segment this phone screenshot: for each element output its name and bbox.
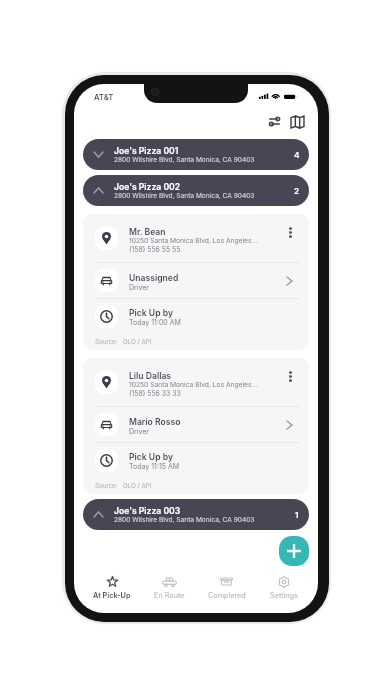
button[interactable]: Settings	[255, 573, 312, 613]
staticText: Unassigned	[129, 273, 179, 283]
button[interactable]: Mario Rosso	[95, 407, 294, 442]
staticText: OLO / API	[123, 338, 152, 346]
button[interactable]: Unassigned	[95, 263, 294, 298]
button[interactable]: More options	[283, 214, 297, 262]
staticText: 4	[294, 150, 300, 160]
staticText: 10250 Santa Monica Blvd, Los Angeles…	[129, 381, 258, 389]
staticText: Joe's Pizza 003	[114, 506, 181, 516]
button[interactable]: Map	[287, 111, 308, 132]
button[interactable]: Joe's Pizza 003	[83, 499, 309, 530]
staticText: Pick Up by	[129, 308, 173, 318]
staticText: Lilu Dallas	[129, 371, 172, 381]
staticText: Today 11:15 AM	[129, 462, 180, 470]
staticText: 2	[294, 186, 300, 196]
staticText: Today 11:00 AM	[129, 318, 181, 326]
button[interactable]: More options	[283, 358, 297, 406]
staticText: Settings	[270, 591, 298, 600]
staticText: Mario Rosso	[129, 417, 181, 427]
staticText: Joe's Pizza 001	[114, 146, 179, 156]
staticText: Source:	[95, 482, 118, 490]
staticText: Joe's Pizza 002	[114, 182, 181, 192]
button[interactable]: Joe's Pizza 001	[83, 139, 309, 170]
staticText: 1	[295, 510, 299, 520]
button[interactable]: En Route	[141, 573, 198, 613]
staticText: Pick Up by	[129, 452, 173, 462]
staticText: Completed	[208, 591, 246, 600]
staticText: 2800 Wilshire Blvd, Santa Monica, CA 904…	[114, 156, 255, 164]
staticText: (158) 556 33 33	[129, 389, 181, 397]
staticText: 10250 Santa Monica Blvd, Los Angeles…	[129, 237, 258, 245]
button[interactable]: Joe's Pizza 002	[83, 175, 309, 206]
staticText: 2800 Wilshire Blvd, Santa Monica, CA 904…	[114, 516, 255, 524]
button[interactable]: Mr. Bean	[95, 214, 297, 262]
staticText: (158) 556 55 55	[129, 245, 181, 253]
button[interactable]: Lilu Dallas	[95, 358, 297, 406]
staticText: OLO / API	[123, 482, 152, 490]
staticText: Driver	[129, 427, 150, 435]
staticText: Driver	[129, 283, 150, 291]
button[interactable]: Add	[279, 536, 309, 566]
button[interactable]: At Pick-Up	[83, 573, 141, 613]
button[interactable]: Filter	[264, 111, 285, 132]
staticText: En Route	[154, 591, 185, 600]
staticText: Mr. Bean	[129, 227, 166, 237]
staticText: At Pick-Up	[93, 591, 131, 600]
button[interactable]: Completed	[198, 573, 255, 613]
staticText: Source:	[95, 338, 118, 346]
staticText: 2800 Wilshire Blvd, Santa Monica, CA 904…	[114, 192, 255, 200]
staticText: AT&T	[94, 92, 114, 101]
